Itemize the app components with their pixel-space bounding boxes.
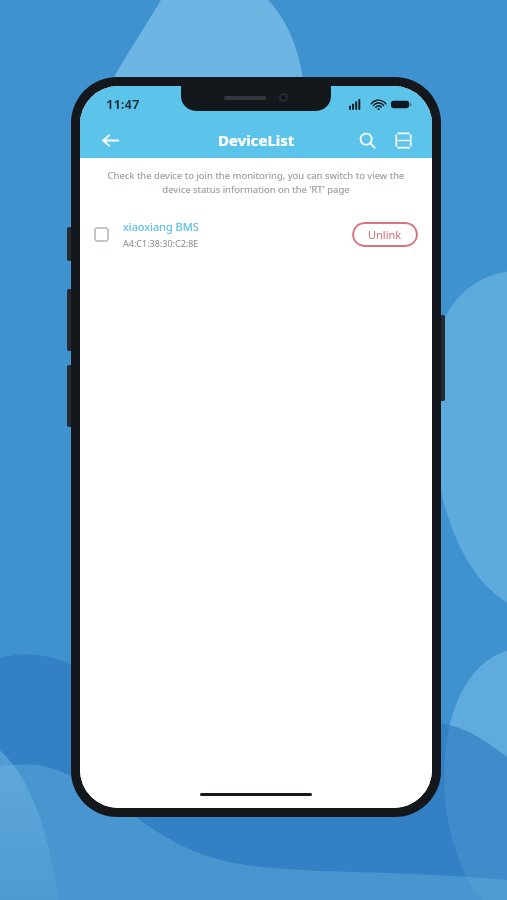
staticText: DeviceList bbox=[218, 130, 295, 150]
staticText: Check the device to join the monitoring,… bbox=[98, 169, 414, 196]
button[interactable]: Back bbox=[94, 124, 126, 156]
staticText: 11:47 bbox=[106, 95, 140, 113]
button[interactable]: Search bbox=[352, 125, 382, 155]
button[interactable]: Unlink bbox=[352, 222, 418, 247]
button[interactable]: Scan QR code bbox=[388, 125, 418, 155]
button[interactable]: Select device bbox=[80, 212, 432, 256]
button[interactable]: Select device bbox=[94, 227, 109, 242]
staticText: Unlink bbox=[368, 227, 402, 242]
staticText: xiaoxiang BMS bbox=[123, 219, 199, 234]
staticText: A4:C1:38:30:C2:8E bbox=[123, 237, 199, 249]
